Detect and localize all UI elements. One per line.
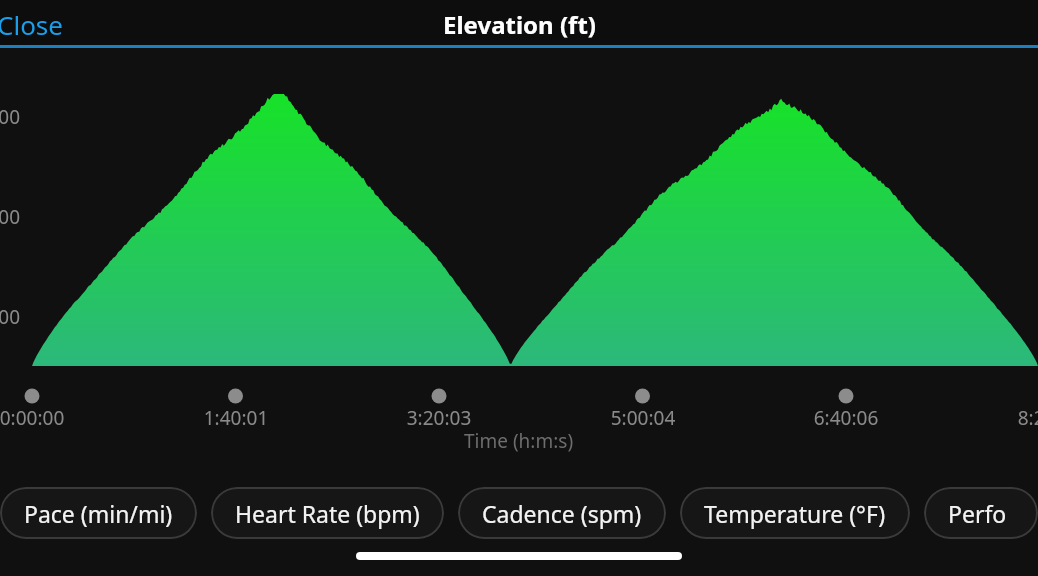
staticText: 3:20:03 bbox=[384, 405, 494, 431]
button[interactable]: Close bbox=[0, 0, 67, 48]
staticText: 8,000 bbox=[0, 204, 20, 230]
staticText: Cadence (spm) bbox=[482, 498, 642, 529]
staticText: 0:00:00 bbox=[0, 405, 87, 431]
staticText: Close bbox=[0, 7, 63, 41]
staticText: 5:00:04 bbox=[588, 405, 698, 431]
staticText: 10,000 bbox=[0, 104, 20, 130]
button[interactable]: Cadence (spm) bbox=[458, 487, 666, 539]
staticText: Temperature (°F) bbox=[704, 498, 886, 529]
staticText: Heart Rate (bpm) bbox=[235, 498, 420, 529]
staticText: Time (h:m:s) bbox=[464, 428, 574, 454]
button[interactable]: Performance Condition bbox=[924, 487, 1038, 539]
button[interactable]: Temperature (°F) bbox=[680, 487, 910, 539]
staticText: Elevation (ft) bbox=[443, 8, 596, 41]
staticText: 8:20:07 bbox=[995, 405, 1038, 431]
staticText: 1:40:01 bbox=[181, 405, 291, 431]
staticText: 6,000 bbox=[0, 304, 20, 330]
staticText: Performance Condition bbox=[948, 498, 1014, 529]
button[interactable]: Heart Rate (bpm) bbox=[211, 487, 444, 539]
staticText: Pace (min/mi) bbox=[24, 498, 173, 529]
staticText: 6:40:06 bbox=[791, 405, 901, 431]
button[interactable]: Pace (min/mi) bbox=[0, 487, 197, 539]
other: Elevation chart bbox=[0, 48, 1038, 482]
